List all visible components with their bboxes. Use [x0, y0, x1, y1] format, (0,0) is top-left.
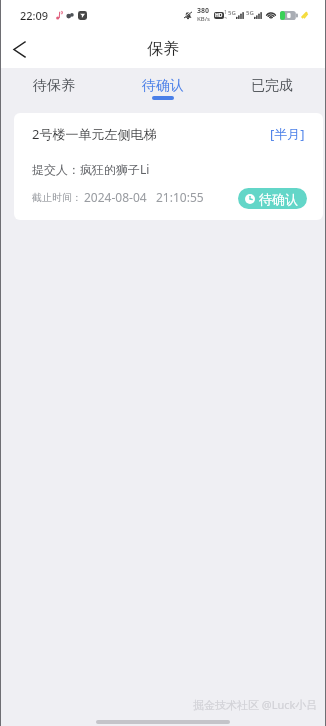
staticText: 2号楼一单元左侧电梯: [32, 125, 157, 143]
staticText: 2: [224, 16, 227, 19]
button[interactable]: 待确认: [108, 68, 217, 103]
staticText: HD: [215, 12, 223, 19]
staticText: 380: [197, 6, 210, 16]
staticText: 待确认: [259, 191, 298, 207]
button[interactable]: 已完成: [217, 68, 326, 103]
button[interactable]: 2号楼一单元左侧电梯: [14, 113, 323, 220]
staticText: 保养: [147, 39, 179, 59]
staticText: 提交人：疯狂的狮子Li: [32, 161, 150, 177]
staticText: 截止时间：: [32, 191, 82, 204]
staticText: KB/s: [197, 15, 210, 23]
staticText: 22:09: [20, 8, 49, 23]
staticText: 已完成: [251, 77, 293, 95]
staticText: [半月]: [270, 125, 305, 143]
staticText: 2024-08-04 21:10:55: [84, 189, 204, 205]
staticText: 1: [224, 9, 227, 16]
staticText: 待保养: [33, 77, 75, 95]
button[interactable]: 待确认: [245, 188, 298, 209]
button[interactable]: Back: [6, 36, 32, 62]
staticText: 5G: [246, 9, 254, 17]
button[interactable]: 待保养: [0, 68, 108, 103]
staticText: 5G: [228, 9, 236, 17]
staticText: 待确认: [142, 77, 184, 95]
staticText: 掘金技术社区 @Luck小吕: [193, 697, 318, 712]
